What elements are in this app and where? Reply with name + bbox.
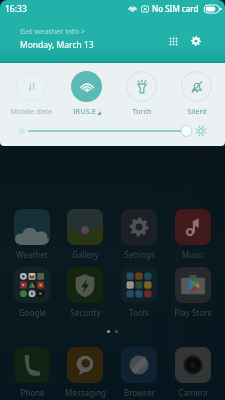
button[interactable]: Camera [167, 347, 219, 398]
staticText: Monday, March 13 [20, 39, 94, 51]
button[interactable]: Gallery [59, 209, 111, 260]
staticText: Camera [178, 387, 208, 398]
button[interactable]: Torch [114, 71, 169, 116]
button[interactable]: Music [167, 209, 219, 260]
staticText: Play Store [174, 307, 212, 318]
button[interactable]: Google [6, 267, 58, 318]
staticText: 16:33 [5, 3, 27, 15]
staticText: Mobile data [10, 106, 52, 116]
staticText: Phone [20, 387, 45, 398]
staticText: Silent [187, 106, 207, 116]
button[interactable]: IRUS.E [59, 71, 114, 116]
staticText: Browser [124, 387, 155, 398]
staticText: Music [182, 249, 204, 260]
button[interactable]: Weather [6, 209, 58, 260]
staticText: No SIM card [152, 3, 199, 14]
staticText: IRUS.E [73, 106, 96, 116]
staticText: Google [19, 307, 46, 318]
staticText: Messaging [65, 387, 106, 398]
button[interactable]: Mobile data [3, 71, 59, 116]
button[interactable]: Phone [6, 347, 58, 398]
button[interactable]: Tools [113, 267, 165, 318]
button[interactable]: Security [59, 267, 111, 318]
staticText: Security [70, 307, 101, 318]
button[interactable]: All apps [162, 30, 184, 52]
staticText: Tools [129, 307, 149, 318]
staticText: Gallery [72, 249, 99, 260]
button[interactable]: Browser [113, 347, 165, 398]
button[interactable]: Settings [113, 209, 165, 260]
staticText: Settings [124, 249, 155, 260]
button[interactable]: Settings [185, 30, 207, 52]
staticText: Get weather info > [20, 26, 86, 36]
button[interactable]: Silent [169, 71, 224, 116]
staticText: Weather [16, 249, 48, 260]
button[interactable]: Messaging [59, 347, 111, 398]
button[interactable]: Play Store [167, 267, 219, 318]
staticText: Torch [132, 106, 152, 116]
